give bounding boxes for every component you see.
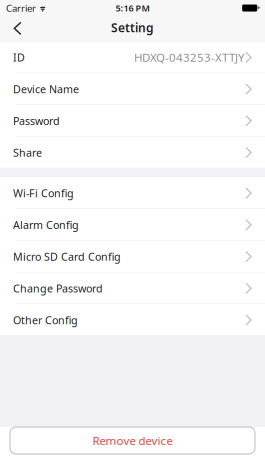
button[interactable]: Share xyxy=(0,137,265,168)
staticText: Alarm Config xyxy=(13,218,79,232)
staticText: Share xyxy=(13,145,42,160)
button[interactable]: Back xyxy=(0,16,34,41)
button[interactable]: ID xyxy=(0,41,265,73)
staticText: Carrier xyxy=(6,1,36,15)
staticText: Remove device xyxy=(92,433,172,448)
button[interactable]: Password xyxy=(0,105,265,137)
staticText: HDXQ-043253-XTTJY xyxy=(134,50,244,65)
staticText: ID xyxy=(13,50,25,65)
staticText: Micro SD Card Config xyxy=(13,249,121,264)
staticText: Setting xyxy=(111,19,154,36)
button[interactable]: Remove device xyxy=(10,427,255,454)
staticText: 5:16 PM xyxy=(115,2,149,14)
staticText: Device Name xyxy=(13,82,79,96)
button[interactable]: Micro SD Card Config xyxy=(0,241,265,272)
button[interactable]: Device Name xyxy=(0,73,265,105)
button[interactable]: Wi-Fi Config xyxy=(0,177,265,209)
staticText: Other Config xyxy=(13,313,78,327)
button[interactable]: Change Password xyxy=(0,272,265,304)
staticText: Password xyxy=(13,113,60,128)
staticText: Change Password xyxy=(13,281,103,295)
button[interactable]: Other Config xyxy=(0,304,265,336)
button[interactable]: Alarm Config xyxy=(0,209,265,241)
staticText: Wi-Fi Config xyxy=(13,186,74,200)
